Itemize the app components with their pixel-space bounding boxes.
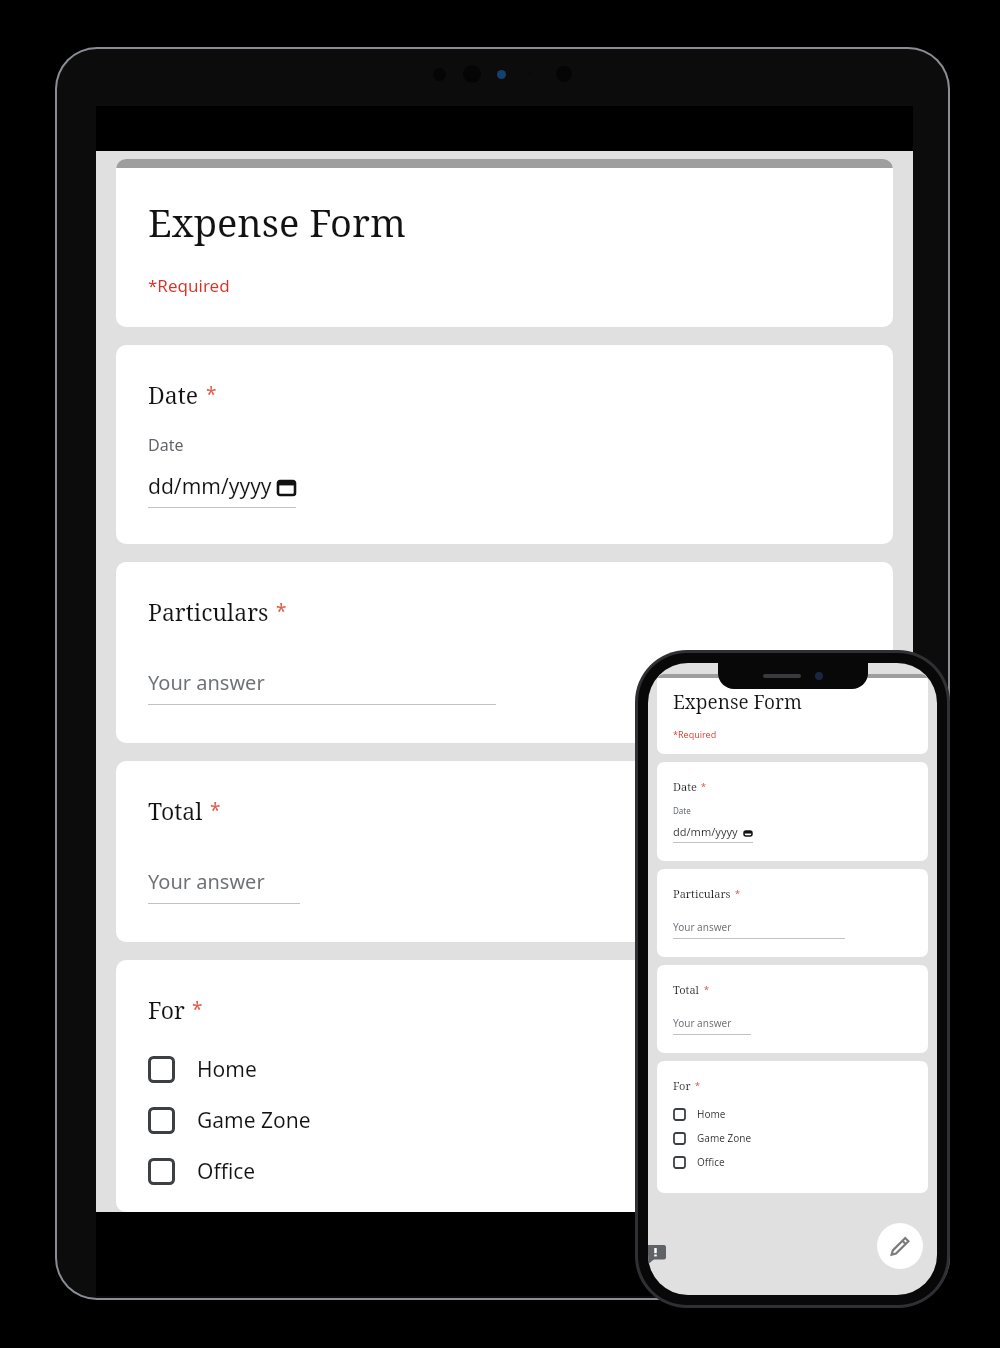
staticText: Total xyxy=(673,982,700,997)
other: Pick date xyxy=(277,477,296,496)
button[interactable]: Total xyxy=(657,965,928,1053)
staticText: * xyxy=(192,996,203,1022)
staticText: * xyxy=(206,381,217,407)
staticText: * xyxy=(695,1079,700,1091)
button[interactable]: For xyxy=(657,1061,928,1193)
staticText: dd/mm/yyyy xyxy=(148,472,272,501)
staticText: * xyxy=(276,598,287,624)
staticText: * xyxy=(210,797,221,823)
staticText: *Required xyxy=(148,274,230,297)
staticText: Date xyxy=(148,434,184,456)
button[interactable]: Expense Form xyxy=(116,159,893,327)
button[interactable]: Date xyxy=(657,762,928,861)
button[interactable]: Home xyxy=(116,1051,893,1088)
button[interactable]: Edit xyxy=(877,1223,923,1269)
staticText: * xyxy=(701,780,706,792)
staticText: Your answer xyxy=(148,669,265,696)
staticText: Game Zone xyxy=(197,1106,311,1135)
button[interactable]: Office xyxy=(657,1153,928,1171)
staticText: Total xyxy=(148,795,203,826)
staticText: dd/mm/yyyy xyxy=(673,824,738,839)
staticText: Office xyxy=(197,1157,256,1186)
staticText: * xyxy=(735,887,740,899)
staticText: Home xyxy=(197,1055,257,1084)
button[interactable]: Office xyxy=(116,1153,893,1190)
button[interactable]: Expense Form xyxy=(657,674,928,754)
staticText: Office xyxy=(697,1155,725,1169)
staticText: * xyxy=(704,983,709,995)
button[interactable]: Feedback xyxy=(648,1245,666,1264)
staticText: For xyxy=(673,1078,691,1093)
button[interactable]: Home xyxy=(657,1105,928,1123)
staticText: Expense Form xyxy=(148,196,406,248)
staticText: Your answer xyxy=(148,868,265,895)
staticText: Date xyxy=(673,805,691,816)
staticText: Date xyxy=(148,379,199,410)
staticText: Particulars xyxy=(673,886,731,901)
staticText: Game Zone xyxy=(697,1131,752,1145)
other: Pick date xyxy=(743,827,753,837)
button[interactable]: Game Zone xyxy=(657,1129,928,1147)
staticText: Date xyxy=(673,779,697,794)
staticText: Expense Form xyxy=(673,689,802,715)
staticText: Your answer xyxy=(673,920,732,934)
staticText: For xyxy=(148,994,185,1025)
button[interactable]: Particulars xyxy=(657,869,928,957)
staticText: *Required xyxy=(673,728,717,740)
staticText: Home xyxy=(697,1107,726,1121)
staticText: Particulars xyxy=(148,596,269,627)
button[interactable]: Game Zone xyxy=(116,1102,893,1139)
staticText: Your answer xyxy=(673,1016,732,1030)
